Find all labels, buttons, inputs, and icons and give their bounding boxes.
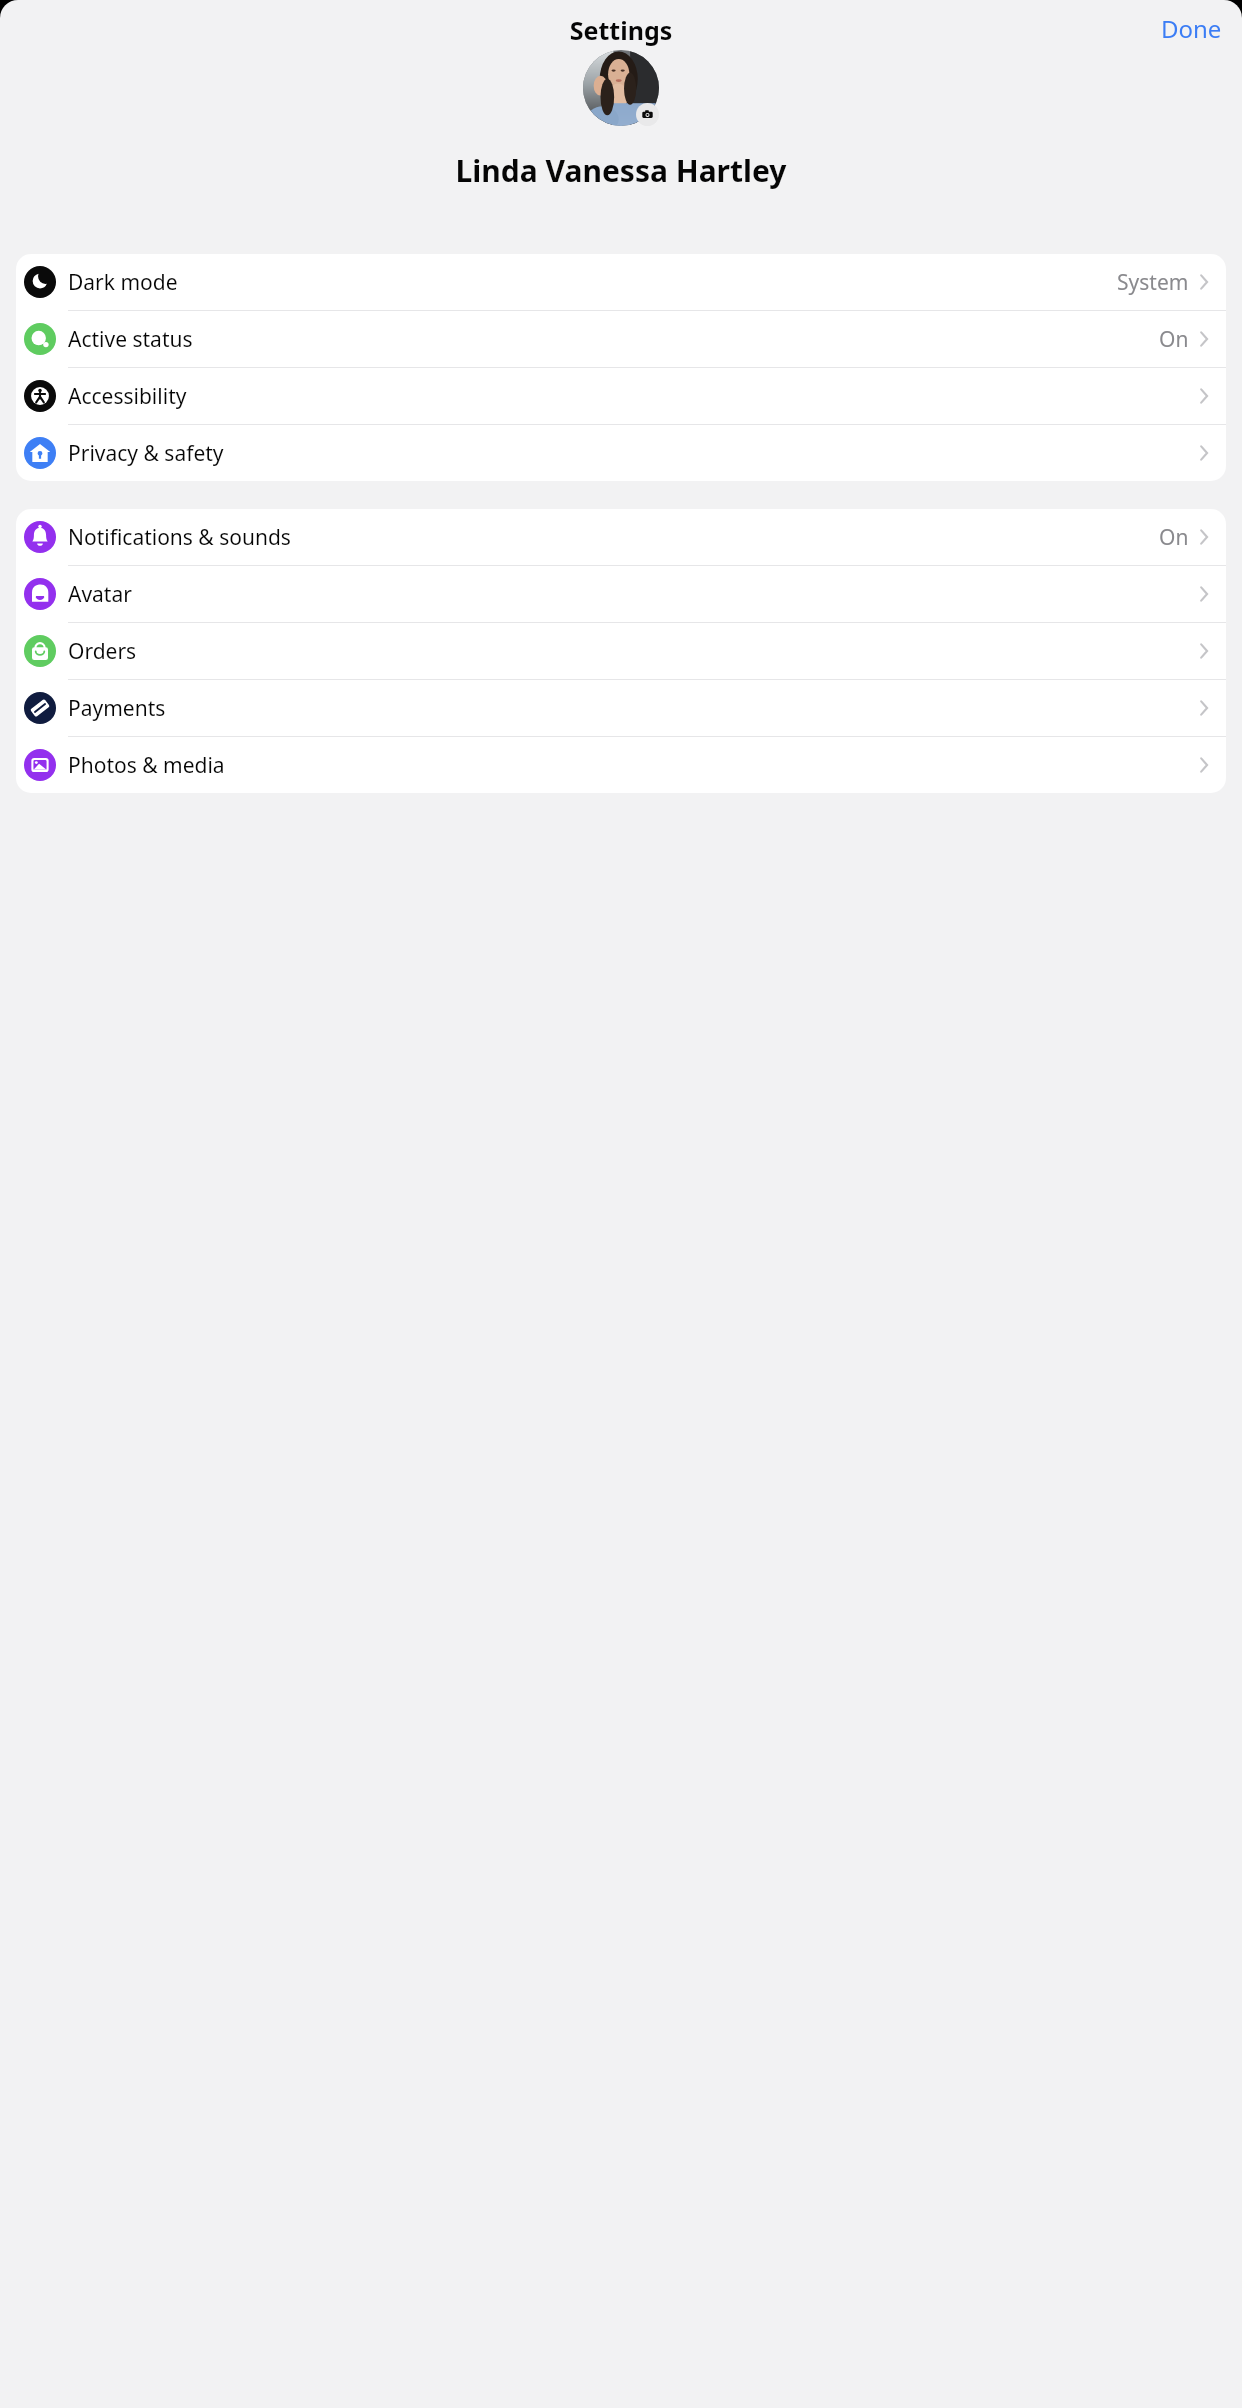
staticText: Privacy & safety bbox=[68, 439, 1197, 468]
button[interactable]: Done bbox=[1157, 8, 1226, 49]
staticText: Accessibility bbox=[68, 382, 1197, 411]
staticText: On bbox=[1159, 325, 1189, 354]
button[interactable]: Photos & media bbox=[16, 737, 1226, 793]
staticText: Dark mode bbox=[68, 268, 1117, 297]
staticText: Notifications & sounds bbox=[68, 523, 1159, 552]
staticText: Linda Vanessa Hartley bbox=[0, 150, 1242, 191]
staticText: Orders bbox=[68, 637, 1197, 666]
button[interactable]: Active status bbox=[16, 311, 1226, 367]
button[interactable]: Accessibility bbox=[16, 368, 1226, 424]
staticText: On bbox=[1159, 523, 1189, 552]
staticText: Done bbox=[1161, 12, 1222, 45]
button[interactable]: Privacy & safety bbox=[16, 425, 1226, 481]
button[interactable]: Avatar bbox=[16, 566, 1226, 622]
staticText: Settings bbox=[0, 13, 1242, 47]
button[interactable]: Notifications & sounds bbox=[16, 509, 1226, 565]
button[interactable]: Payments bbox=[16, 680, 1226, 736]
staticText: Photos & media bbox=[68, 751, 1197, 780]
staticText: Payments bbox=[68, 694, 1197, 723]
button[interactable]: Change profile photo bbox=[636, 103, 659, 126]
button[interactable]: Orders bbox=[16, 623, 1226, 679]
staticText: Avatar bbox=[68, 580, 1197, 609]
staticText: Active status bbox=[68, 325, 1159, 354]
button[interactable]: Dark mode bbox=[16, 254, 1226, 310]
staticText: System bbox=[1117, 268, 1189, 297]
